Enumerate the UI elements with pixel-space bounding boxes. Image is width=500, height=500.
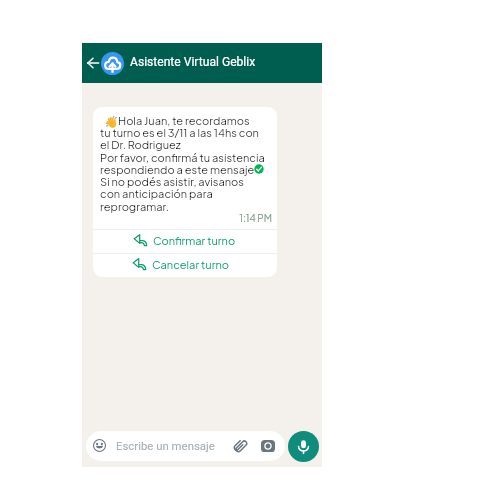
button[interactable]: Attach file (233, 439, 247, 453)
button[interactable]: Camera (261, 439, 275, 453)
staticText: Si no podés asistir, avisanos (100, 175, 244, 189)
staticText: tu turno es el 3/11 a las 14hs con (100, 126, 259, 140)
button[interactable]: Cancelar turno (93, 254, 277, 277)
button[interactable]: Back (83, 53, 103, 73)
staticText: con anticipación para (100, 187, 213, 201)
staticText: Asistente Virtual Geblix (130, 55, 256, 69)
button[interactable]: Record voice message (288, 431, 319, 462)
button[interactable]: Emoji (86, 431, 285, 461)
button[interactable]: Contact avatar (101, 52, 124, 75)
button[interactable]: Emoji (93, 439, 106, 452)
button[interactable]: Confirmar turno (93, 230, 277, 253)
staticText: Cancelar turno (152, 258, 229, 272)
staticText: 1:14 PM (93, 212, 272, 224)
staticText: Escribe un mensaje (116, 439, 215, 452)
staticText: respondiendo a este mensaje (100, 163, 255, 177)
staticText: Confirmar turno (153, 234, 236, 248)
staticText: reprogramar. (100, 200, 170, 214)
staticText: el Dr. Rodriguez (100, 138, 181, 152)
staticText: Hola Juan, te recordamos (118, 114, 250, 128)
staticText: Por favor, confirmá tu asistencia (100, 151, 265, 165)
